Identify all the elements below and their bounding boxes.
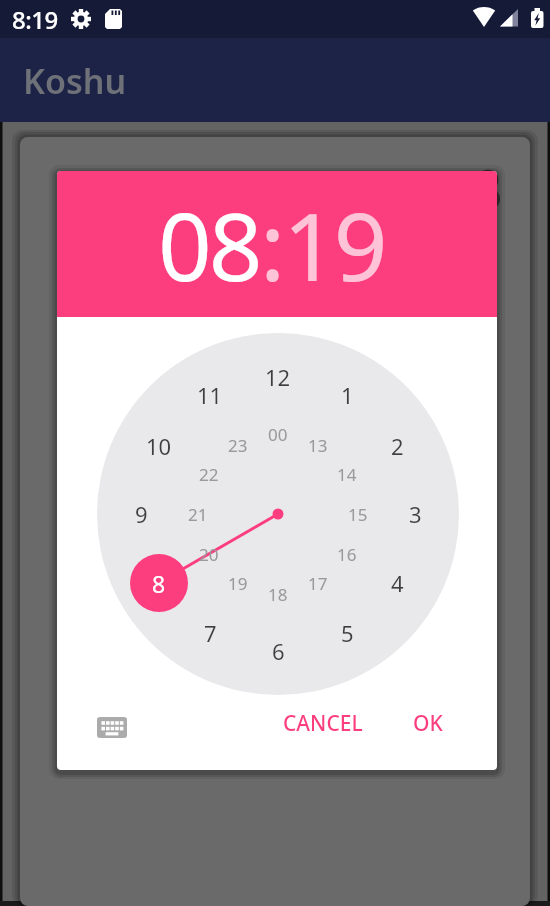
staticText: 22	[199, 463, 219, 486]
staticText: 4	[391, 568, 404, 598]
staticText: 20	[199, 543, 219, 566]
staticText: 19	[283, 181, 385, 309]
staticText: 11	[197, 380, 223, 410]
staticText: 2	[391, 431, 404, 461]
staticText: 10	[146, 431, 172, 461]
staticText: 15	[348, 503, 368, 526]
staticText: 8:19	[12, 3, 58, 36]
staticText: CANCEL	[283, 709, 363, 738]
staticText: 8	[152, 568, 166, 599]
button[interactable]: OK	[398, 693, 458, 753]
button[interactable]: 8	[130, 554, 188, 612]
staticText: Koshu	[23, 58, 127, 104]
button[interactable]	[87, 705, 137, 749]
staticText: 08	[158, 181, 260, 309]
staticText: 16	[337, 543, 357, 566]
staticText: 14	[337, 463, 357, 486]
staticText: 17	[308, 572, 328, 595]
staticText: 00	[268, 423, 288, 446]
staticText: OK	[413, 709, 443, 738]
staticText: 7	[204, 618, 217, 648]
staticText: 19	[228, 572, 248, 595]
button[interactable]: CANCEL	[268, 668, 378, 770]
staticText: :	[260, 181, 283, 309]
staticText: 1	[341, 380, 354, 410]
staticText: 3	[409, 499, 422, 529]
staticText: 23	[228, 434, 248, 457]
staticText: 9	[135, 499, 148, 529]
staticText: 12	[265, 362, 291, 392]
staticText: 13	[308, 434, 328, 457]
staticText: 6	[272, 636, 285, 666]
staticText: 21	[188, 503, 208, 526]
staticText: 5	[341, 618, 354, 648]
staticText: 18	[268, 583, 288, 606]
